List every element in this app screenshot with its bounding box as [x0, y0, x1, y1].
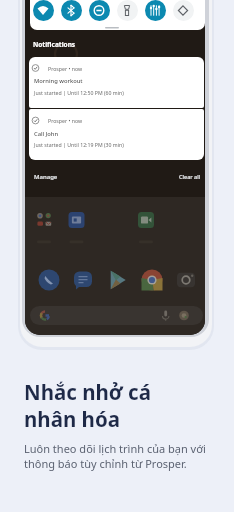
- staticText: Manage: [34, 173, 58, 181]
- staticText: Just started | Until 12:19 PM (30 min): [34, 141, 124, 148]
- button[interactable]: [29, 57, 204, 108]
- staticText: Just started | Until 12:50 PM (60 min): [34, 89, 124, 96]
- staticText: Luôn theo dõi lịch trình của bạn với thô…: [24, 441, 206, 471]
- button[interactable]: [33, 0, 54, 21]
- button[interactable]: [89, 0, 110, 21]
- button[interactable]: [117, 0, 138, 21]
- button[interactable]: [173, 0, 194, 21]
- button[interactable]: Manage: [34, 173, 58, 181]
- button[interactable]: Clear all: [155, 173, 201, 183]
- button[interactable]: [61, 0, 82, 21]
- staticText: Clear all: [179, 173, 201, 180]
- staticText: Morning workout: [34, 77, 83, 85]
- staticText: Notifications: [33, 40, 76, 49]
- staticText: Prosper • now: [48, 117, 83, 124]
- button[interactable]: [29, 109, 204, 160]
- staticText: Call John: [34, 130, 59, 138]
- button[interactable]: [145, 0, 166, 21]
- staticText: Prosper • now: [48, 65, 83, 72]
- staticText: Nhắc nhở cá nhân hóa: [24, 378, 151, 433]
